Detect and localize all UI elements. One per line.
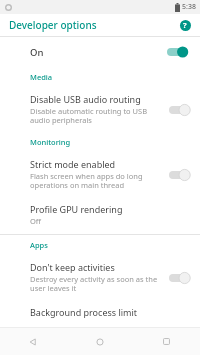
staticText: Apps <box>30 240 48 250</box>
staticText: Monitoring <box>30 137 71 147</box>
button[interactable]: Background process limit <box>0 300 200 327</box>
button[interactable]: Disable USB audio routing <box>0 87 200 132</box>
staticText: Disable automatic routing to USB audio p… <box>30 106 162 126</box>
button[interactable]: Home <box>66 328 133 355</box>
button[interactable]: Back <box>0 328 66 355</box>
button[interactable]: Toggle off <box>168 270 192 286</box>
staticText: Off <box>30 216 42 226</box>
staticText: On <box>30 46 166 59</box>
button[interactable]: On <box>0 37 200 67</box>
staticText: Background process limit <box>30 306 138 318</box>
button[interactable]: Profile GPU rendering <box>0 197 200 232</box>
button[interactable]: Help <box>176 16 194 34</box>
staticText: Destroy every activity as soon as the us… <box>30 274 162 294</box>
button[interactable]: Toggle off <box>168 167 192 183</box>
staticText: 5:38 <box>182 2 196 12</box>
staticText: Flash screen when apps do long operation… <box>30 171 162 191</box>
staticText: Strict mode enabled <box>30 158 116 170</box>
button[interactable]: Strict mode enabled <box>0 152 200 197</box>
staticText: Media <box>30 72 53 82</box>
button[interactable]: Don't keep activities <box>0 255 200 300</box>
staticText: ? <box>183 20 187 30</box>
button[interactable]: Recent apps <box>133 328 200 355</box>
staticText: Developer options <box>9 18 97 32</box>
staticText: Profile GPU rendering <box>30 203 123 215</box>
staticText: Don't keep activities <box>30 261 115 273</box>
button[interactable]: Toggle off <box>168 102 192 118</box>
button[interactable]: Toggle on <box>166 44 190 60</box>
staticText: Disable USB audio routing <box>30 93 141 105</box>
